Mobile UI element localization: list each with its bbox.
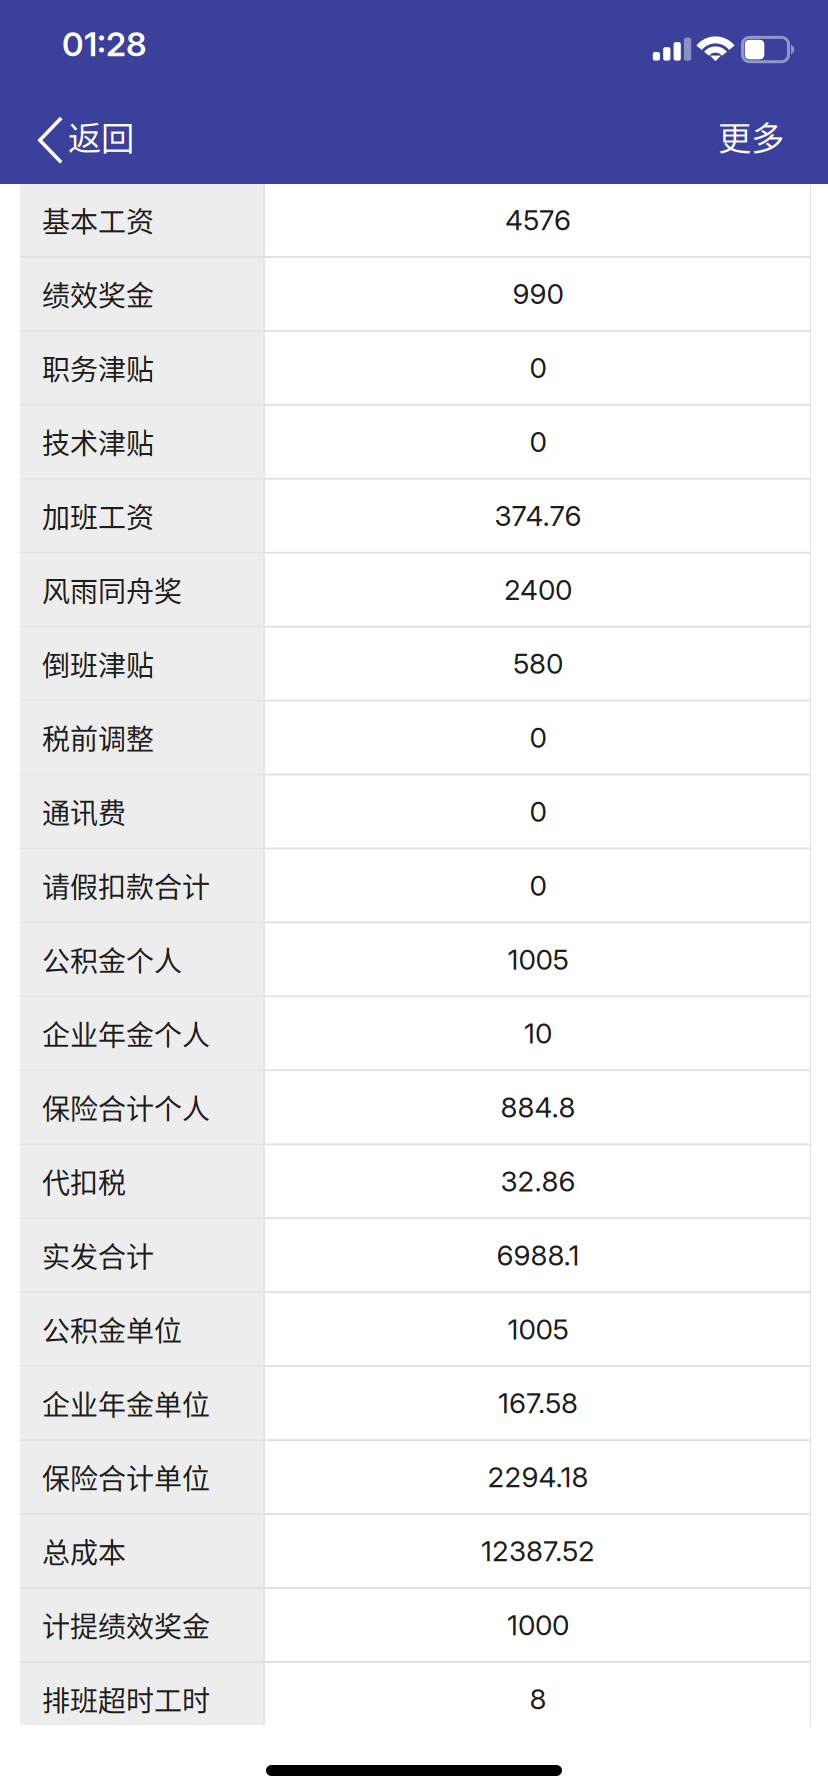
staticText: 实发合计 <box>42 1235 154 1275</box>
staticText: 10 <box>524 1016 552 1050</box>
staticText: 公积金单位 <box>42 1309 182 1349</box>
staticText: 加班工资 <box>42 495 154 536</box>
staticText: 8 <box>529 1682 546 1716</box>
button[interactable]: 更多 <box>684 88 828 184</box>
staticText: 2294.18 <box>487 1460 588 1494</box>
staticText: 基本工资 <box>42 200 154 240</box>
staticText: 保险合计单位 <box>42 1457 210 1497</box>
staticText: 通讯费 <box>42 791 126 832</box>
staticText: 0 <box>529 721 546 755</box>
staticText: 倒班津贴 <box>42 643 154 684</box>
staticText: 公积金个人 <box>42 939 182 980</box>
staticText: 技术津贴 <box>42 422 154 462</box>
staticText: 返回 <box>68 112 134 160</box>
staticText: 374.76 <box>494 499 581 533</box>
staticText: 1005 <box>507 942 568 976</box>
staticText: 0 <box>529 869 546 902</box>
staticText: 1000 <box>507 1608 569 1642</box>
staticText: 0 <box>529 795 546 828</box>
button[interactable]: 返回 <box>0 88 160 184</box>
staticText: 2400 <box>504 573 572 607</box>
staticText: 税前调整 <box>42 717 154 758</box>
staticText: 保险合计个人 <box>42 1087 210 1128</box>
staticText: 总成本 <box>42 1531 126 1571</box>
staticText: 企业年金单位 <box>42 1383 210 1423</box>
staticText: 0 <box>529 425 546 459</box>
staticText: 6988.1 <box>496 1238 579 1272</box>
staticText: 计提绩效奖金 <box>42 1605 210 1645</box>
staticText: 1005 <box>507 1312 568 1346</box>
staticText: 580 <box>513 647 563 681</box>
staticText: 职务津贴 <box>42 348 154 388</box>
staticText: 990 <box>512 277 563 311</box>
staticText: 企业年金个人 <box>42 1013 210 1054</box>
staticText: 4576 <box>505 203 571 237</box>
staticText: 请假扣款合计 <box>42 865 210 906</box>
staticText: 32.86 <box>500 1164 575 1198</box>
staticText: 167.58 <box>498 1386 578 1420</box>
staticText: 01:28 <box>62 24 147 64</box>
staticText: 排班超时工时 <box>42 1679 210 1719</box>
staticText: 风雨同舟奖 <box>42 569 182 610</box>
staticText: 884.8 <box>500 1090 575 1124</box>
staticText: 代扣税 <box>42 1161 126 1202</box>
staticText: 绩效奖金 <box>42 274 154 314</box>
staticText: 更多 <box>718 112 784 160</box>
staticText: 12387.52 <box>481 1534 595 1568</box>
staticText: 0 <box>529 351 546 385</box>
